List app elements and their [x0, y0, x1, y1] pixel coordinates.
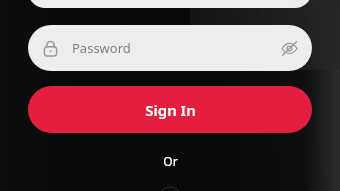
button[interactable]: Sign In	[28, 86, 312, 133]
staticText: Sign In	[145, 100, 196, 120]
button[interactable]: Password	[28, 25, 312, 71]
staticText: Or	[163, 153, 178, 169]
button[interactable]	[28, 0, 312, 8]
button[interactable]: Show password	[272, 31, 306, 65]
button[interactable]: Sign in with social account	[150, 187, 190, 191]
staticText: Password	[72, 39, 131, 57]
